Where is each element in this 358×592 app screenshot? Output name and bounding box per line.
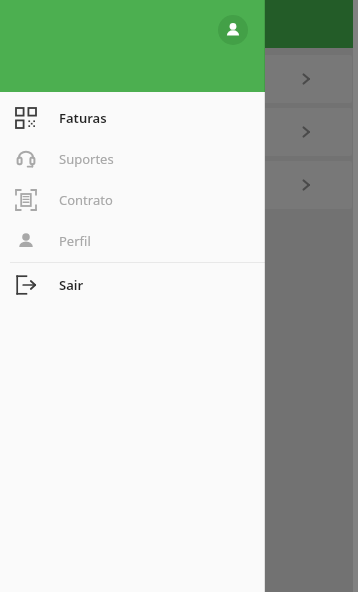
button[interactable] <box>6 108 352 156</box>
button[interactable] <box>6 161 352 209</box>
staticText: Perfil <box>59 232 91 250</box>
staticText: Sair <box>59 276 84 294</box>
button[interactable]: Contrato <box>0 179 265 220</box>
staticText: Faturas <box>59 109 107 127</box>
button[interactable]: Perfil <box>0 220 265 261</box>
staticText: Contrato <box>59 191 113 209</box>
button[interactable]: Account <box>218 15 248 45</box>
button[interactable]: Sair <box>0 264 265 305</box>
button[interactable]: Suportes <box>0 138 265 179</box>
button[interactable] <box>6 55 352 103</box>
button[interactable]: Faturas <box>0 97 265 138</box>
staticText: Suportes <box>59 150 114 168</box>
